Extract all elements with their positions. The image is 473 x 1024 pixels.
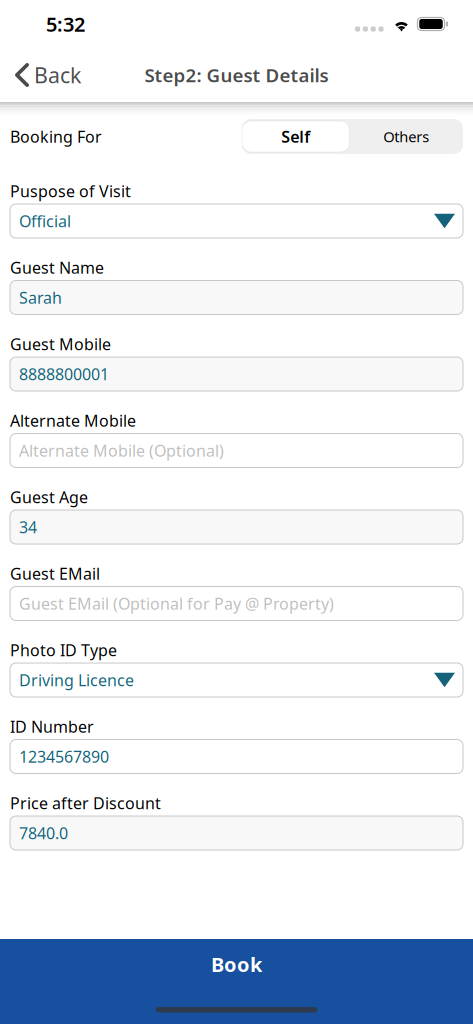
staticText: Self [281, 126, 310, 147]
button[interactable]: Self [242, 121, 349, 152]
button[interactable]: Official [10, 204, 463, 238]
staticText: Photo ID Type [10, 639, 117, 661]
button[interactable]: 34 [10, 510, 463, 544]
staticText: Guest EMail (Optional for Pay @ Property… [19, 593, 334, 614]
staticText: 1234567890 [19, 746, 109, 767]
staticText: 34 [19, 516, 37, 538]
staticText: Back [34, 61, 81, 89]
staticText: Puspose of Visit [10, 180, 131, 202]
button[interactable]: Driving Licence [10, 663, 463, 697]
staticText: 7840.0 [19, 822, 68, 844]
button[interactable]: 7840.0 [10, 816, 463, 850]
button[interactable]: Guest EMail (Optional for Pay @ Property… [10, 586, 463, 620]
button[interactable]: Alternate Mobile (Optional) [10, 433, 463, 467]
button[interactable]: 8888800001 [10, 357, 463, 391]
staticText: Price after Discount [10, 792, 161, 814]
staticText: Sarah [19, 287, 62, 308]
staticText: Book [211, 951, 262, 978]
staticText: Alternate Mobile [10, 410, 136, 431]
staticText: 5:32 [46, 11, 85, 37]
staticText: Guest Name [10, 257, 104, 278]
staticText: Alternate Mobile (Optional) [19, 440, 224, 461]
staticText: Booking For [10, 126, 102, 147]
staticText: Guest Age [10, 486, 88, 508]
button[interactable]: 1234567890 [10, 739, 463, 773]
staticText: Step2: Guest Details [144, 63, 328, 87]
staticText: Official [19, 210, 71, 232]
staticText: ID Number [10, 716, 94, 737]
staticText: Others [383, 127, 429, 146]
staticText: Guest Mobile [10, 333, 111, 355]
button[interactable]: Book [0, 939, 473, 1024]
button[interactable]: Sarah [10, 280, 463, 314]
staticText: 8888800001 [19, 363, 109, 385]
staticText: Driving Licence [19, 669, 134, 691]
button[interactable]: Back [0, 53, 91, 97]
button[interactable]: Others [349, 121, 463, 152]
staticText: Guest EMail [10, 563, 100, 584]
